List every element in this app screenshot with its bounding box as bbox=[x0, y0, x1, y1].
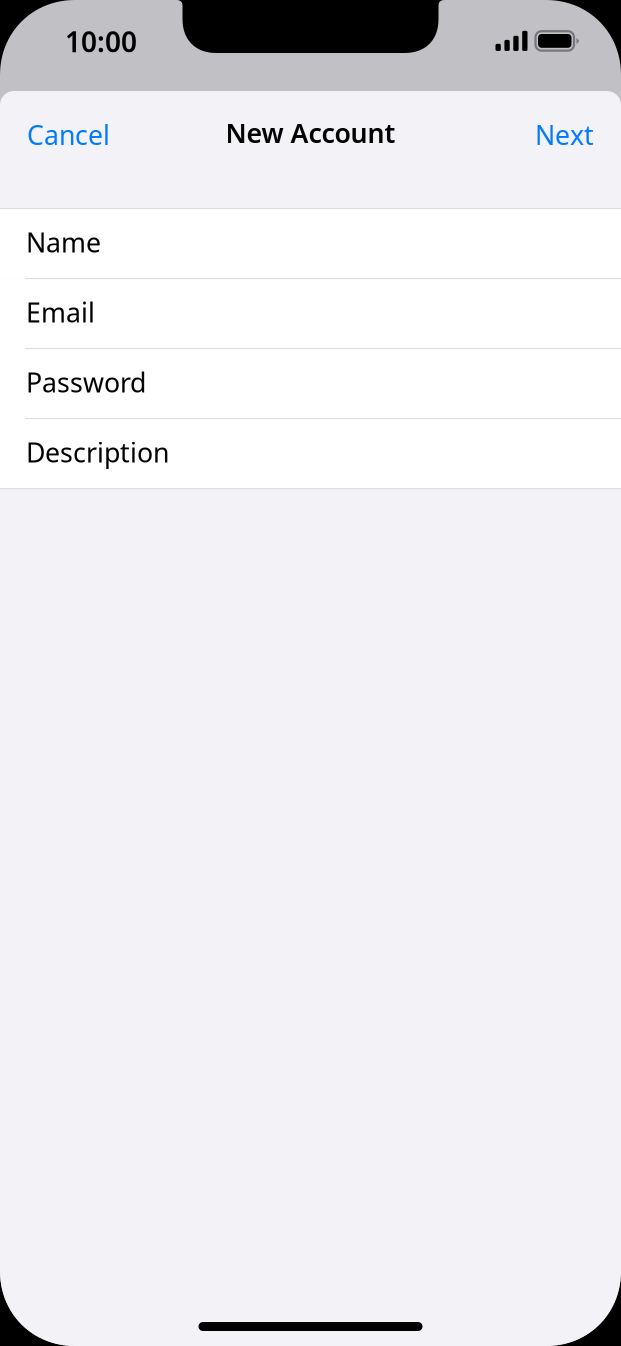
button[interactable]: Cancel bbox=[23, 105, 114, 164]
button[interactable]: Email bbox=[0, 279, 621, 349]
button[interactable]: Next bbox=[531, 105, 598, 164]
staticText: Name bbox=[26, 224, 101, 260]
button[interactable]: Password bbox=[0, 349, 621, 419]
staticText: Email bbox=[26, 294, 95, 330]
button[interactable]: Name bbox=[0, 209, 621, 279]
staticText: Next bbox=[535, 117, 594, 152]
staticText: Cancel bbox=[27, 117, 110, 152]
staticText: New Account bbox=[225, 115, 395, 150]
staticText: Password bbox=[26, 364, 146, 400]
button[interactable]: Description bbox=[0, 419, 621, 489]
staticText: 10:00 bbox=[65, 23, 137, 60]
staticText: Description bbox=[26, 434, 169, 470]
